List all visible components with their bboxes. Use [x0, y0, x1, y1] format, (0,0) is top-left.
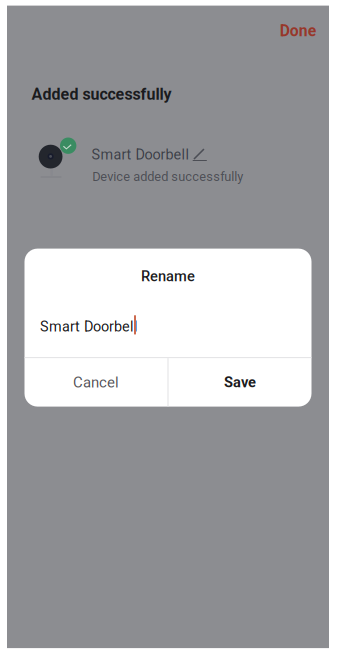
staticText: Smart Doorbell [91, 146, 189, 163]
staticText: Save [224, 374, 256, 391]
staticText: Rename [141, 268, 195, 285]
button[interactable]: Save [168, 358, 311, 407]
staticText: Done [280, 22, 316, 40]
staticText: Device added successfully [92, 169, 243, 184]
button[interactable]: Done [270, 14, 326, 48]
button[interactable]: Cancel [24, 358, 167, 407]
staticText: Cancel [73, 374, 119, 391]
staticText: Smart Doorbell [40, 318, 138, 335]
staticText: Added successfully [32, 85, 172, 104]
